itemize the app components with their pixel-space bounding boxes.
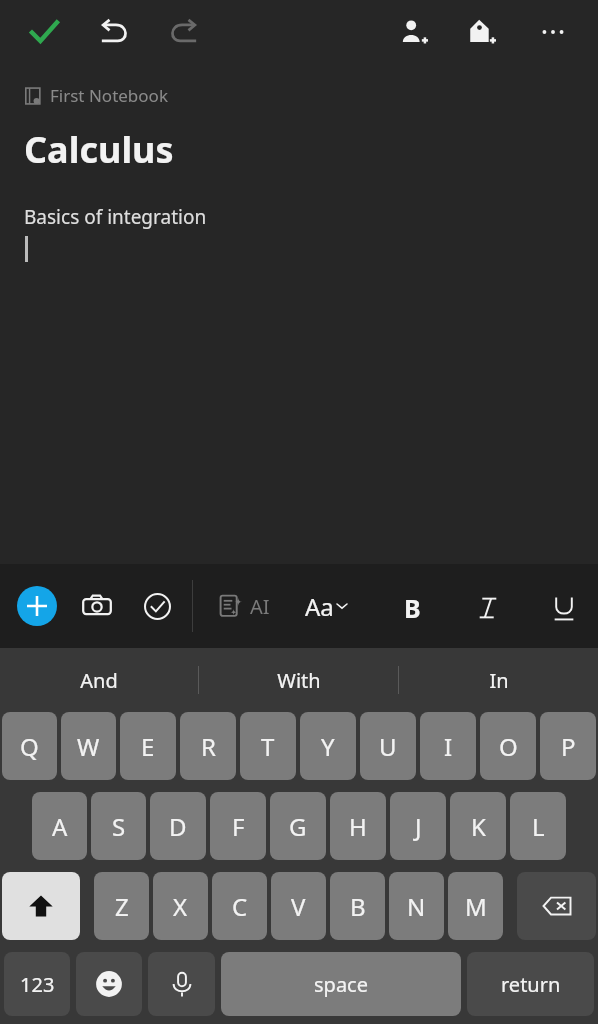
button[interactable]: Redo: [158, 6, 210, 58]
staticText: In: [489, 667, 509, 694]
staticText: Aa: [305, 590, 334, 623]
staticText: R: [201, 730, 216, 763]
button[interactable]: Italic: [464, 584, 512, 632]
button[interactable]: AI: [218, 586, 270, 626]
staticText: Y: [321, 730, 335, 763]
button[interactable]: Insert: [13, 582, 61, 630]
button[interactable]: W: [61, 712, 116, 780]
staticText: I: [444, 730, 453, 763]
staticText: return: [501, 971, 561, 998]
staticText: space: [314, 971, 368, 998]
button[interactable]: V: [271, 872, 326, 940]
staticText: S: [112, 810, 126, 843]
staticText: D: [169, 810, 187, 843]
button[interactable]: Add tag: [456, 6, 508, 58]
button[interactable]: First Notebook: [24, 84, 168, 107]
button[interactable]: B: [388, 584, 436, 632]
staticText: And: [80, 667, 118, 694]
button[interactable]: H: [330, 792, 386, 860]
button[interactable]: T: [240, 712, 296, 780]
button[interactable]: O: [480, 712, 536, 780]
staticText: Calculus: [24, 125, 174, 174]
button[interactable]: Underline: [540, 584, 588, 632]
button[interactable]: D: [150, 792, 206, 860]
button[interactable]: Done: [18, 6, 70, 58]
button[interactable]: X: [153, 872, 208, 940]
staticText: J: [415, 810, 422, 843]
button[interactable]: Checklist: [133, 582, 181, 630]
button[interactable]: Add people: [388, 6, 440, 58]
button[interactable]: Aa: [305, 586, 347, 626]
button[interactable]: Undo: [88, 6, 140, 58]
button[interactable]: Shift: [2, 872, 80, 940]
staticText: H: [349, 810, 367, 843]
button[interactable]: U: [360, 712, 416, 780]
button[interactable]: M: [448, 872, 503, 940]
button[interactable]: Z: [94, 872, 149, 940]
staticText: AI: [250, 593, 270, 620]
button[interactable]: And: [0, 648, 198, 712]
staticText: A: [52, 810, 68, 843]
staticText: B: [350, 890, 366, 923]
button[interactable]: J: [390, 792, 446, 860]
staticText: T: [261, 730, 275, 763]
staticText: K: [471, 810, 486, 843]
button[interactable]: L: [510, 792, 566, 860]
staticText: U: [379, 730, 397, 763]
button[interactable]: R: [180, 712, 236, 780]
button[interactable]: space: [221, 952, 461, 1016]
staticText: Q: [20, 730, 39, 763]
staticText: G: [289, 810, 307, 843]
button[interactable]: Emoji: [76, 952, 142, 1016]
staticText: L: [532, 810, 545, 843]
staticText: First Notebook: [50, 84, 168, 107]
button[interactable]: Voice input: [148, 952, 215, 1016]
button[interactable]: With: [199, 648, 398, 712]
button[interactable]: A: [32, 792, 87, 860]
staticText: V: [291, 890, 306, 923]
button[interactable]: More options: [527, 6, 579, 58]
staticText: Z: [115, 890, 129, 923]
staticText: W: [77, 730, 100, 763]
button[interactable]: P: [540, 712, 596, 780]
button[interactable]: Q: [2, 712, 57, 780]
staticText: With: [277, 667, 321, 694]
staticText: X: [173, 890, 188, 923]
staticText: 123: [20, 971, 55, 998]
button[interactable]: K: [450, 792, 506, 860]
button[interactable]: F: [210, 792, 266, 860]
staticText: N: [407, 890, 426, 923]
button[interactable]: C: [212, 872, 267, 940]
button[interactable]: E: [120, 712, 176, 780]
button[interactable]: G: [270, 792, 326, 860]
staticText: P: [561, 730, 576, 763]
button[interactable]: In: [399, 648, 598, 712]
staticText: C: [232, 890, 248, 923]
staticText: O: [499, 730, 518, 763]
staticText: M: [465, 890, 487, 923]
button[interactable]: B: [330, 872, 385, 940]
button[interactable]: S: [91, 792, 146, 860]
button[interactable]: I: [420, 712, 476, 780]
button[interactable]: 123: [4, 952, 70, 1016]
button[interactable]: return: [467, 952, 594, 1016]
staticText: E: [141, 730, 155, 763]
button[interactable]: Y: [300, 712, 356, 780]
staticText: B: [404, 591, 421, 625]
button[interactable]: Camera: [73, 582, 121, 630]
staticText: Basics of integration: [24, 204, 207, 230]
staticText: F: [232, 810, 245, 843]
button[interactable]: N: [389, 872, 444, 940]
button[interactable]: Backspace: [517, 872, 596, 940]
